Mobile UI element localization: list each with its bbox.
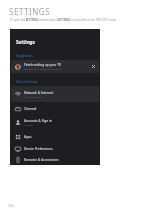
button[interactable]: Device Preferences [11,143,99,154]
staticText: SETTINGS [9,6,51,17]
staticText: Remotes & Accessories [24,158,59,162]
staticText: Accounts & Sign in [24,119,52,123]
staticText: Channel [24,107,37,111]
button[interactable]: Finish setting up your TV [11,60,99,73]
button[interactable]: Remotes & Accessories [11,154,99,165]
button[interactable]: Channel [11,103,99,114]
staticText: Connect to a network and more [24,67,62,70]
button[interactable]: Network & Internet [11,86,99,102]
staticText: 2/4 [8,203,14,208]
staticText: Not connected [24,95,42,98]
staticText: Device Preferences [24,147,53,151]
button[interactable]: Dismiss suggestion [89,62,98,71]
staticText: Finish setting up your TV [24,63,61,67]
button[interactable]: Accounts & Sign in [11,116,99,129]
button[interactable]: Apps [11,131,99,142]
staticText: Suggestions [16,54,33,58]
staticText: To open the SETTINGS window select SETTI… [10,18,146,22]
staticText: Network & Internet [24,91,54,95]
staticText: Account [24,123,34,126]
staticText: Settings [16,39,35,45]
staticText: Device Settings [16,80,38,84]
staticText: Apps [24,135,32,139]
